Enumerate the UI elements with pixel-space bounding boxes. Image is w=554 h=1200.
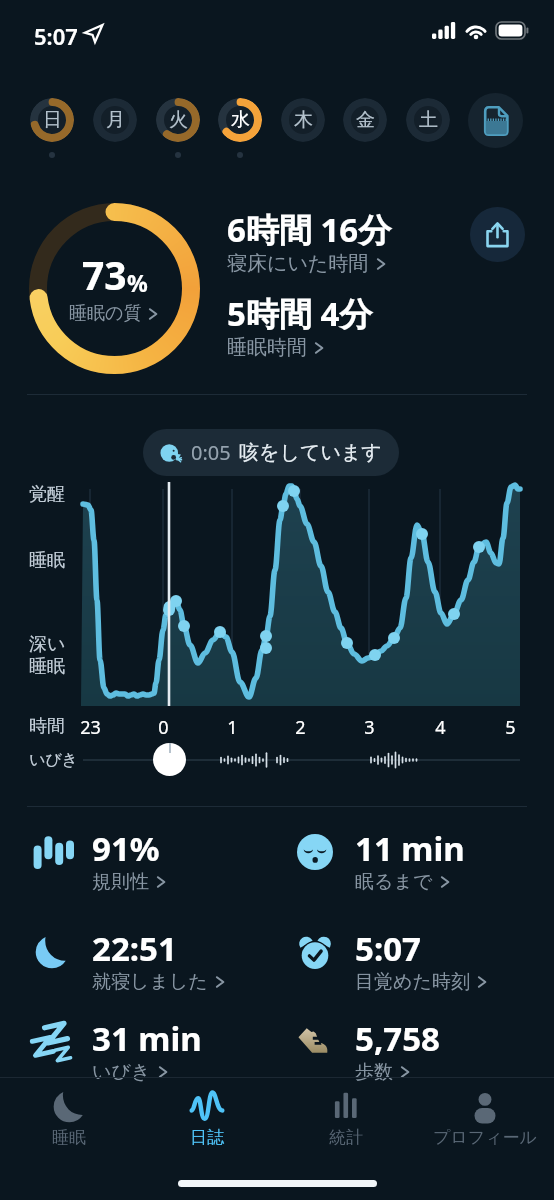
staticText: 就寝しました [92,970,208,993]
staticText: 5時間 4分 [227,291,373,336]
button[interactable]: 土 [406,98,450,142]
button[interactable]: 寝床にいた時間 [227,251,388,276]
staticText: 91% [92,826,160,871]
button[interactable]: 睡眠の質 [69,302,160,325]
button[interactable]: 22:51 [32,926,227,994]
staticText: 金 [356,108,375,132]
staticText: 睡眠時間 [227,335,307,360]
button[interactable]: 木 [281,98,325,142]
staticText: 咳をしています [239,440,382,465]
staticText: 5:07 [355,926,421,971]
button[interactable]: 日誌 [138,1078,276,1158]
staticText: % [127,267,148,298]
staticText: 深い 睡眠 [29,633,66,677]
staticText: 23 [80,715,101,740]
staticText: 月 [106,108,125,132]
staticText: いびき [92,1060,151,1083]
staticText: いびき [29,750,79,770]
staticText: 5 [505,715,516,740]
button[interactable]: Notes [468,93,523,148]
button[interactable]: 月 [93,98,137,142]
button[interactable] [29,203,200,374]
staticText: 土 [419,108,438,132]
button[interactable]: 金 [343,98,387,142]
staticText: 4 [435,715,446,740]
staticText: 0 [158,715,169,740]
staticText: 5:07 [34,21,78,51]
staticText: 歩数 [355,1060,393,1083]
staticText: 時間 [29,715,65,738]
button[interactable]: 91% [32,826,168,894]
staticText: 2 [295,715,306,740]
button[interactable]: 31 min [32,1016,202,1084]
staticText: 22:51 [92,926,177,971]
staticText: 3 [364,715,375,740]
staticText: 73 [82,248,127,301]
button[interactable]: 睡眠 [0,1078,138,1158]
button[interactable]: プロフィール [415,1078,554,1158]
staticText: 木 [294,108,313,132]
button[interactable]: Playhead [153,743,186,776]
staticText: 規則性 [92,870,149,893]
staticText: 5,758 [355,1016,440,1061]
staticText: 0:05 [191,439,231,466]
staticText: 日誌 [190,1127,224,1148]
staticText: 1 [227,715,238,740]
staticText: 31 min [92,1016,202,1061]
staticText: プロフィール [433,1127,537,1148]
staticText: 睡眠の質 [69,302,142,325]
button[interactable]: 日 [30,98,74,142]
staticText: 水 [231,108,250,132]
staticText: 睡眠 [29,549,65,572]
staticText: 覚醒 [29,483,65,506]
staticText: 統計 [329,1127,363,1148]
staticText: 睡眠 [52,1127,86,1148]
button[interactable]: 統計 [276,1078,415,1158]
button[interactable]: Share [470,207,525,262]
staticText: 日 [43,108,62,132]
button[interactable]: 5:07 [295,926,489,994]
staticText: 目覚めた時刻 [355,970,470,993]
button[interactable]: 0:05 [143,429,399,476]
button[interactable]: 5,758 [295,1016,440,1084]
staticText: 眠るまで [355,870,433,893]
staticText: 11 min [355,826,465,871]
button[interactable]: 11 min [295,826,465,894]
button[interactable]: 睡眠時間 [227,335,326,360]
button[interactable]: 火 [156,98,200,142]
staticText: 寝床にいた時間 [227,251,369,276]
button[interactable]: 水 [218,98,262,142]
staticText: 火 [169,108,188,132]
staticText: 6時間 16分 [227,207,392,252]
